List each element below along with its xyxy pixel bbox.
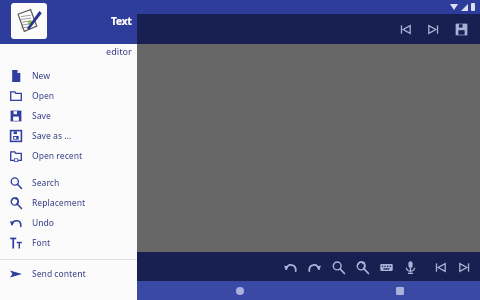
button[interactable]: Open bbox=[0, 86, 137, 106]
button[interactable]: Search bbox=[327, 256, 349, 278]
button[interactable]: Undo bbox=[0, 213, 137, 233]
staticText: Save as ... bbox=[32, 130, 72, 142]
button[interactable]: Redo bbox=[303, 256, 325, 278]
button[interactable]: Recents bbox=[320, 281, 480, 300]
button[interactable]: Previous bbox=[394, 18, 416, 40]
button[interactable]: Font bbox=[0, 233, 137, 253]
button[interactable]: Replacement bbox=[0, 193, 137, 213]
button[interactable]: Voice input bbox=[399, 256, 421, 278]
button[interactable]: Undo bbox=[279, 256, 301, 278]
button[interactable]: Keyboard bbox=[375, 256, 397, 278]
staticText: Search bbox=[32, 177, 60, 189]
button[interactable]: Home bbox=[160, 281, 320, 300]
staticText: 17:18 bbox=[5, 2, 26, 13]
button[interactable]: Send content bbox=[0, 264, 137, 284]
button[interactable]: Go to end bbox=[453, 256, 475, 278]
button[interactable]: Save bbox=[0, 106, 137, 126]
button[interactable]: Replace bbox=[351, 256, 373, 278]
staticText: Send content bbox=[32, 268, 86, 280]
staticText: Open bbox=[32, 90, 55, 102]
button[interactable]: Save bbox=[450, 18, 472, 40]
staticText: Save bbox=[32, 110, 51, 122]
button[interactable]: Save as ... bbox=[0, 126, 137, 146]
staticText: New bbox=[32, 70, 51, 82]
button[interactable]: Text editor bbox=[11, 3, 47, 39]
staticText: Text bbox=[111, 14, 132, 28]
button[interactable]: Go to start bbox=[429, 256, 451, 278]
button[interactable]: Next bbox=[422, 18, 444, 40]
button[interactable]: New bbox=[0, 66, 137, 86]
staticText: editor bbox=[106, 45, 132, 57]
button[interactable]: Search bbox=[0, 173, 137, 193]
staticText: Open recent bbox=[32, 150, 83, 162]
staticText: Undo bbox=[32, 217, 55, 229]
staticText: Replacement bbox=[32, 197, 86, 209]
button[interactable]: Open recent bbox=[0, 146, 137, 166]
button[interactable]: Back bbox=[0, 281, 160, 300]
staticText: Font bbox=[32, 237, 51, 249]
